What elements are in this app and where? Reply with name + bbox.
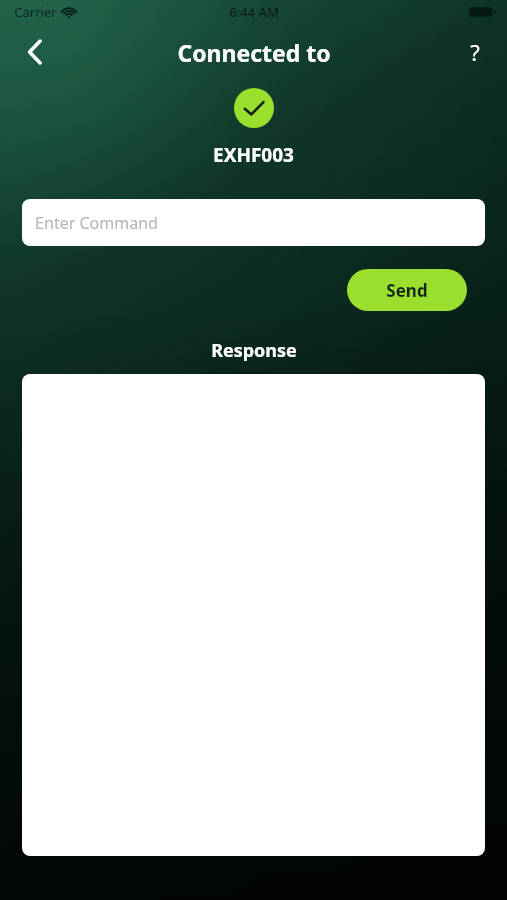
staticText: Enter Command (35, 212, 158, 234)
staticText: EXHF003 (213, 142, 294, 168)
button[interactable] (22, 374, 485, 856)
button[interactable]: Help (452, 29, 498, 75)
button[interactable]: Back (12, 29, 58, 75)
staticText: Response (211, 338, 297, 363)
button[interactable]: Enter Command (22, 199, 485, 246)
staticText: Connected to (177, 37, 331, 68)
staticText: ? (470, 37, 480, 67)
staticText: Carrier (14, 3, 57, 21)
staticText: Send (386, 279, 428, 302)
button[interactable]: Send (347, 269, 467, 311)
staticText: 6:44 AM (229, 3, 279, 21)
